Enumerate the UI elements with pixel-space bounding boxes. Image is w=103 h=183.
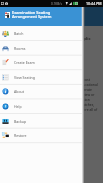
staticText: Rooms (14, 46, 26, 51)
button[interactable]: Examination Seating (0, 7, 83, 26)
button[interactable]: Rooms (0, 41, 83, 56)
staticText: Backup (14, 119, 27, 124)
button[interactable]: Help (0, 99, 83, 114)
staticText: Restore (14, 133, 27, 138)
staticText: 10:44 PM (86, 1, 102, 6)
staticText: Arrangement System (12, 14, 52, 19)
button[interactable]: Batch (0, 26, 83, 41)
staticText: View Seating (14, 75, 35, 80)
button[interactable]: About (0, 84, 83, 99)
staticText: Examination seating arrangement is one o… (6, 77, 98, 117)
staticText: About (14, 89, 24, 94)
button[interactable]: Backup (0, 114, 83, 129)
staticText: Batch (14, 31, 24, 36)
staticText: Examination Seating (12, 10, 51, 15)
button[interactable]: Restore (0, 128, 83, 143)
staticText: 0.1KB/s (51, 2, 62, 6)
staticText: Create Exam (14, 60, 35, 65)
staticText: Help (14, 104, 22, 109)
staticText: Welcome to the Examination Seating Appli… (6, 36, 91, 41)
button[interactable]: View Seating (0, 70, 83, 85)
button[interactable]: Create Exam (0, 55, 83, 70)
